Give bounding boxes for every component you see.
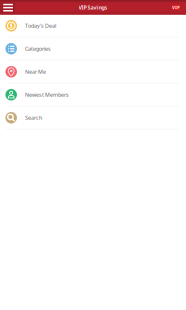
staticText: VIP Savings [78,4,107,11]
staticText: VIP [172,5,179,10]
staticText: Categories [25,45,51,52]
button[interactable]: VIP [172,5,186,10]
button[interactable]: Categories [0,38,186,61]
button[interactable]: Near Me [0,61,186,84]
staticText: Newest Members [25,91,69,98]
button[interactable]: Search [0,107,186,130]
button[interactable]: Newest Members [0,84,186,107]
staticText: Today's Deal [25,22,56,29]
button[interactable]: Today's Deal [0,15,186,38]
staticText: Near Me [25,68,46,75]
staticText: Search [25,114,42,121]
button[interactable]: Menu [0,2,15,13]
